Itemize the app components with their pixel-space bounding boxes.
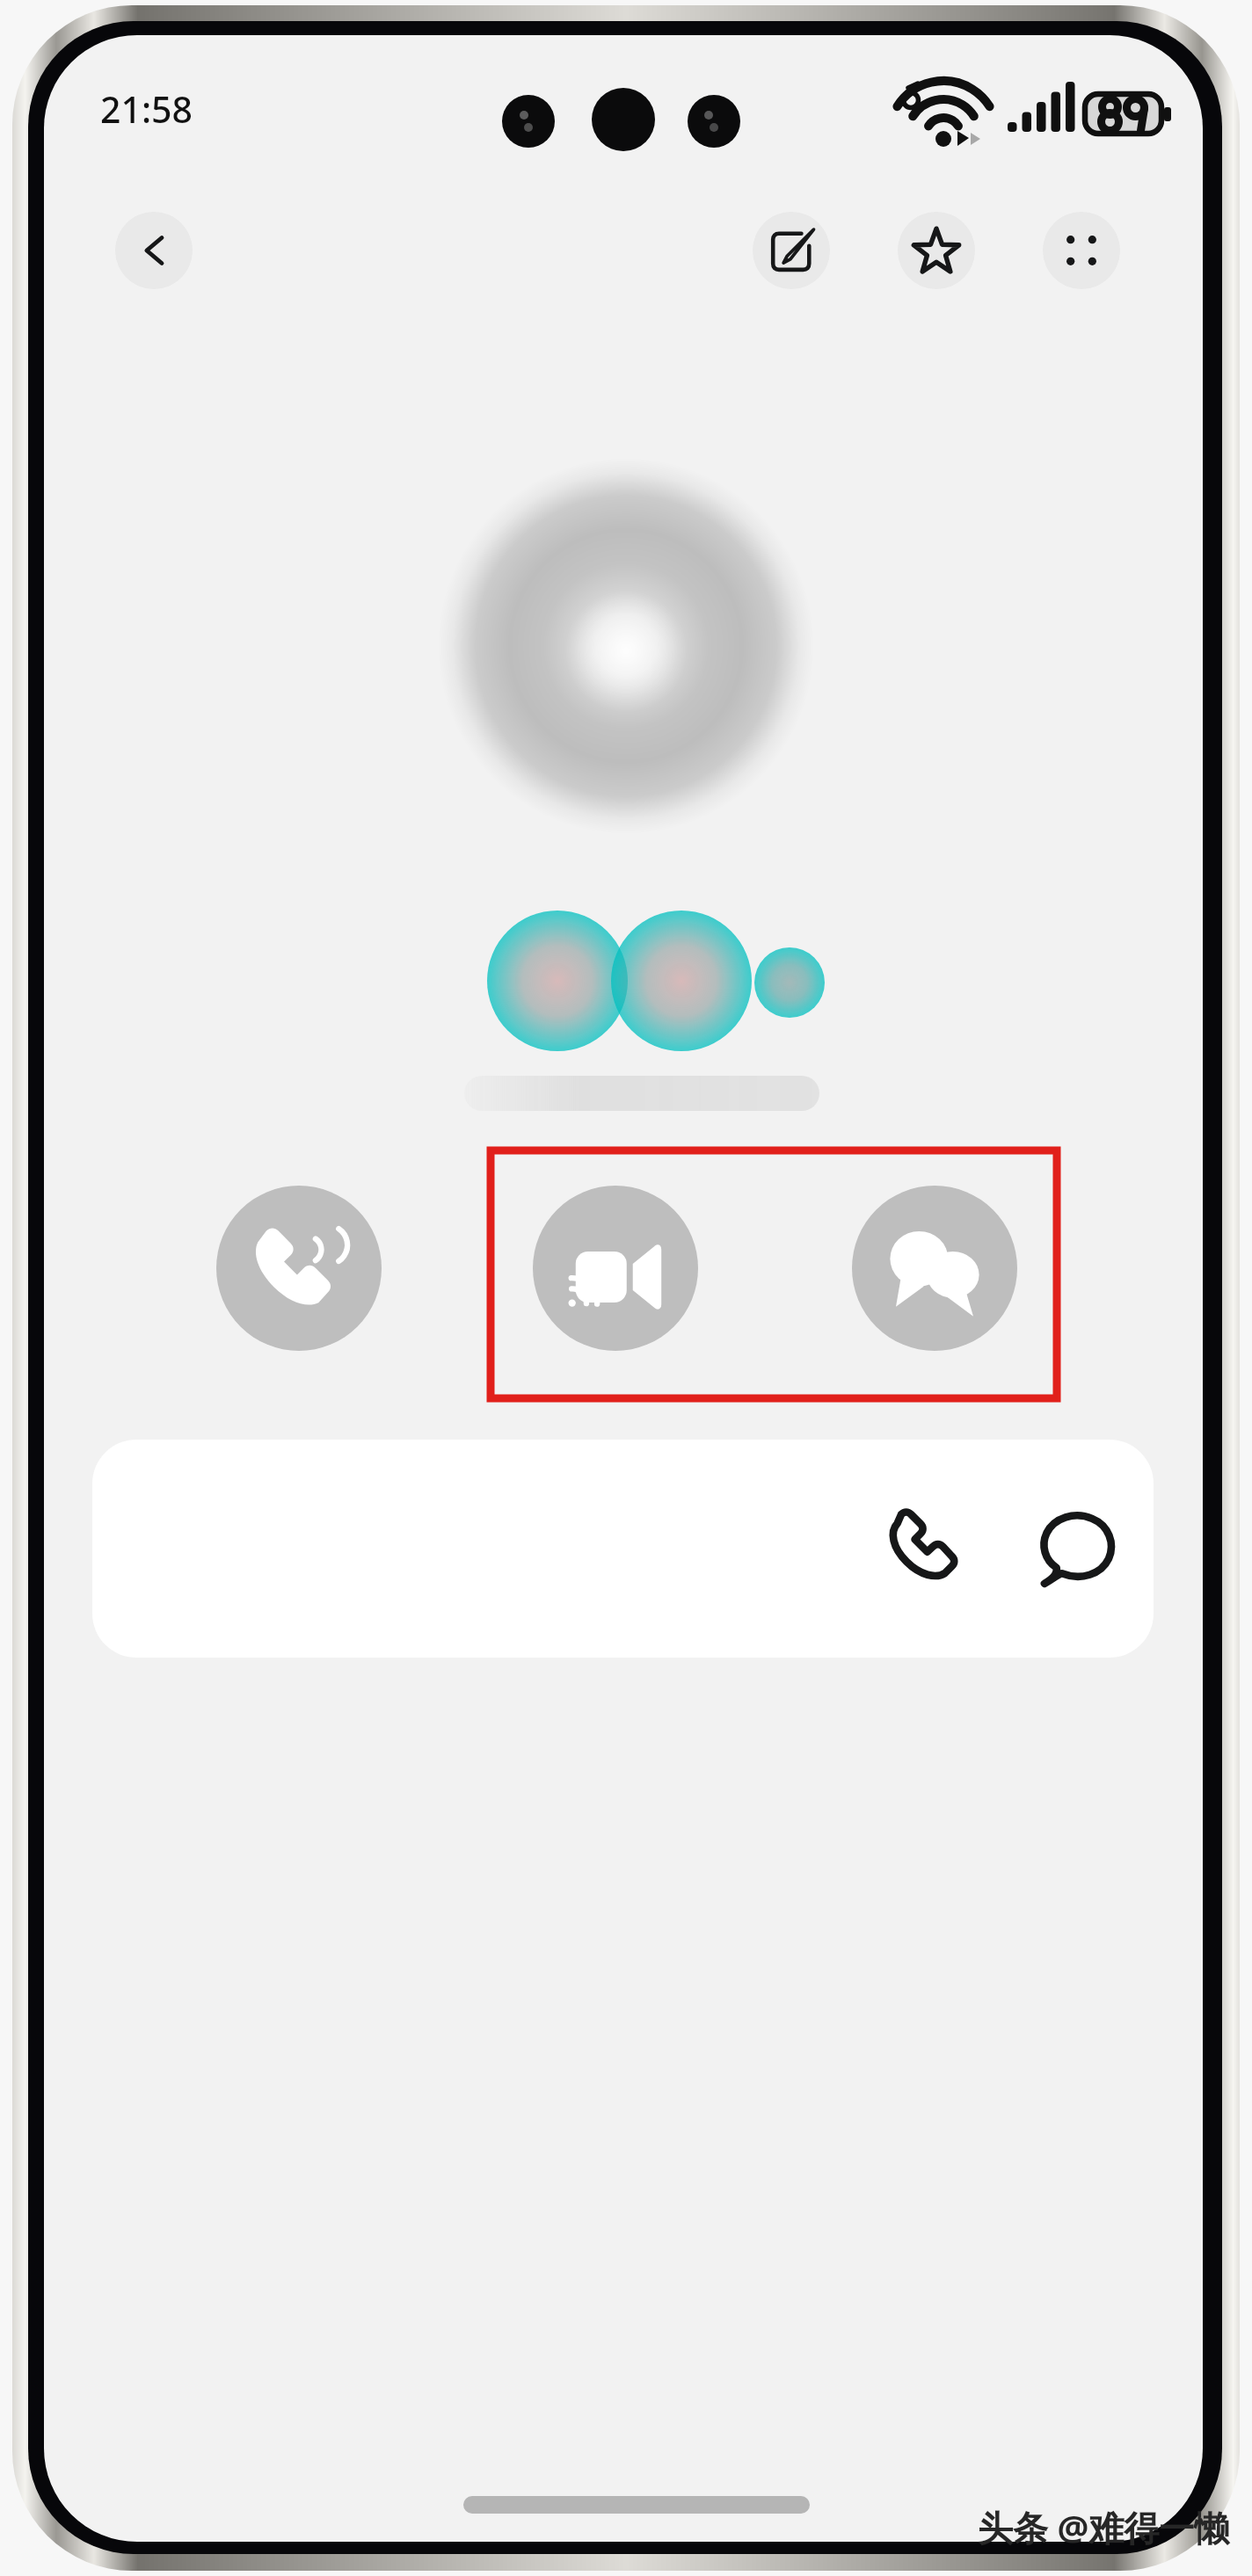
- button[interactable]: Add to favourites: [898, 212, 975, 289]
- button[interactable]: Send message: [1038, 1513, 1114, 1588]
- staticText: 头条 @难得一懒: [978, 2503, 1230, 2551]
- button[interactable]: Call number: [885, 1513, 961, 1588]
- button[interactable]: More options: [1043, 212, 1120, 289]
- button[interactable]: [92, 1440, 1154, 1658]
- staticText: 21:58: [100, 84, 193, 134]
- button[interactable]: Edit contact: [753, 212, 830, 289]
- button[interactable]: Message: [852, 1186, 1017, 1351]
- button[interactable]: Video call: [533, 1186, 698, 1351]
- button[interactable]: Back: [115, 212, 193, 289]
- button[interactable]: Call: [216, 1186, 382, 1351]
